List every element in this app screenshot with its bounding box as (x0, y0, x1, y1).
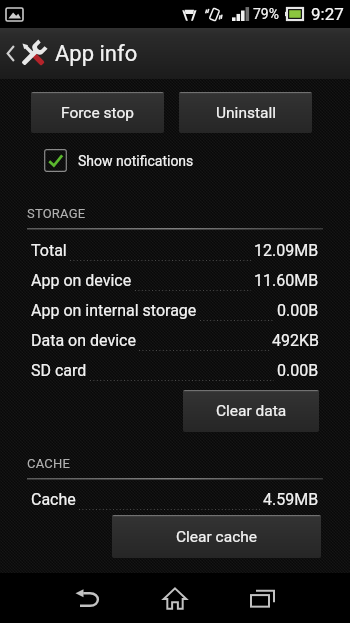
staticText: CACHE (27, 456, 70, 471)
button[interactable]: Home (143, 573, 207, 623)
staticText: 0.00B (277, 361, 319, 380)
button[interactable]: Recent apps (230, 573, 294, 623)
button[interactable]: Data on device (0, 325, 350, 355)
button[interactable]: SD card (0, 355, 350, 385)
staticText: Data on device (31, 331, 136, 350)
staticText: 9:27 (311, 4, 344, 24)
staticText: Clear cache (176, 528, 258, 546)
button[interactable]: Total (0, 235, 350, 265)
button[interactable]: Navigate up (0, 28, 51, 79)
staticText: Force stop (61, 104, 134, 122)
staticText: App info (55, 41, 138, 67)
staticText: Cache (31, 490, 76, 509)
staticText: App on device (31, 271, 132, 290)
button[interactable]: Back (55, 573, 119, 623)
button[interactable]: App on device (0, 265, 350, 295)
button[interactable]: Clear cache (112, 515, 321, 558)
staticText: 12.09MB (254, 241, 319, 260)
staticText: STORAGE (27, 206, 86, 221)
button[interactable]: Uninstall (179, 92, 312, 133)
button[interactable]: Force stop (31, 92, 164, 133)
staticText: App on internal storage (31, 301, 197, 320)
staticText: 0.00B (277, 301, 319, 320)
staticText: Clear data (216, 402, 287, 420)
staticText: Total (31, 241, 67, 260)
staticText: 11.60MB (254, 271, 319, 290)
staticText: SD card (31, 361, 87, 380)
staticText: Uninstall (216, 104, 276, 122)
button[interactable]: Cache (0, 484, 350, 514)
staticText: Show notifications (78, 153, 194, 169)
button[interactable]: Show notifications (44, 149, 194, 172)
staticText: 79% (253, 6, 279, 22)
staticText: 492KB (272, 331, 319, 350)
button[interactable]: App on internal storage (0, 295, 350, 325)
staticText: 4.59MB (263, 490, 319, 509)
button[interactable]: Clear data (183, 390, 319, 432)
